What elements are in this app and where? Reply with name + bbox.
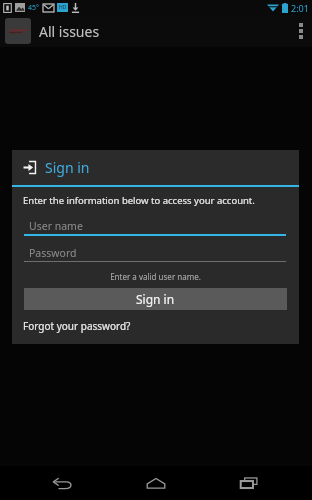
button[interactable]: Back <box>33 466 93 500</box>
staticText: Forgot your password? <box>23 319 131 333</box>
button[interactable]: All issues <box>0 15 100 47</box>
button[interactable]: Home <box>126 466 186 500</box>
other: Sign in <box>23 161 36 174</box>
button[interactable]: Sign in <box>24 288 287 310</box>
staticText: Sign in <box>45 158 90 177</box>
staticText: All issues <box>39 22 100 41</box>
button[interactable]: Password <box>24 244 286 262</box>
staticText: Password <box>29 246 77 260</box>
staticText: 2:01 <box>291 2 309 14</box>
staticText: 45° <box>28 3 40 13</box>
staticText: Sign in <box>136 291 175 307</box>
button[interactable]: Recent apps <box>219 466 279 500</box>
button[interactable]: More options <box>290 15 312 47</box>
staticText: Enter the information below to access yo… <box>23 194 255 207</box>
button[interactable]: User name <box>24 217 286 236</box>
button[interactable]: Forgot your password? <box>12 319 142 333</box>
staticText: Enter a valid user name. <box>12 271 299 282</box>
staticText: User name <box>29 219 83 233</box>
staticText: HD <box>59 4 67 11</box>
